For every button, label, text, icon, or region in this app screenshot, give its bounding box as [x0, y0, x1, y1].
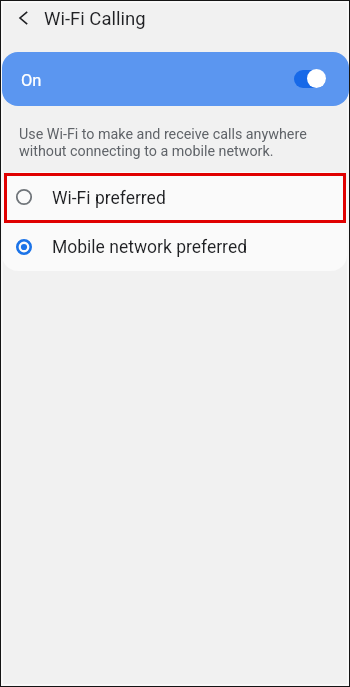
- staticText: Use Wi-Fi to make and receive calls anyw…: [19, 126, 319, 159]
- staticText: Mobile network preferred: [52, 237, 248, 258]
- staticText: On: [21, 71, 42, 90]
- button[interactable]: Wi-Fi preferred: [2, 172, 347, 222]
- button[interactable]: Navigate up: [9, 3, 39, 33]
- button[interactable]: Mobile network preferred: [2, 222, 347, 271]
- staticText: Wi-Fi preferred: [52, 188, 166, 209]
- button[interactable]: Wi-Fi Calling on: [294, 68, 330, 90]
- button[interactable]: On: [2, 52, 349, 106]
- staticText: Wi-Fi Calling: [44, 8, 146, 30]
